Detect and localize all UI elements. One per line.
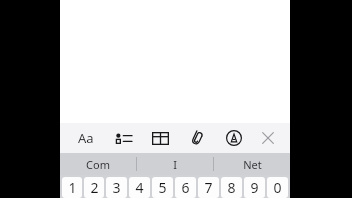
staticText: 6 [181,178,190,197]
button[interactable]: Close [256,124,280,152]
staticText: Com [86,157,110,172]
staticText: 3 [112,178,121,197]
staticText: 2 [90,178,99,197]
button[interactable]: Text format [74,124,98,152]
staticText: I [173,157,177,172]
button[interactable]: Attach file [185,124,209,152]
button[interactable]: 6 [175,177,196,198]
button[interactable]: 1 [62,177,82,198]
staticText: Aa [78,129,94,147]
button[interactable]: 5 [152,177,173,198]
button[interactable]: Net [214,153,290,175]
staticText: Net [243,157,262,172]
staticText: 4 [135,178,144,197]
button[interactable]: 4 [129,177,150,198]
button[interactable]: 3 [106,177,127,198]
staticText: 7 [204,178,213,197]
staticText: 0 [273,178,282,197]
button[interactable]: 2 [84,177,104,198]
button[interactable]: Com [60,153,136,175]
button[interactable]: 9 [244,177,265,198]
button[interactable]: Markup [222,124,246,152]
button[interactable]: I [137,153,213,175]
staticText: 8 [227,178,236,197]
button[interactable]: 8 [221,177,242,198]
button[interactable]: Insert table [148,124,172,152]
button[interactable]: Bulleted list [111,124,135,152]
staticText: 1 [68,178,77,197]
button[interactable]: 0 [267,177,288,198]
staticText: 9 [250,178,259,197]
staticText: 5 [158,178,167,197]
button[interactable]: 7 [198,177,219,198]
